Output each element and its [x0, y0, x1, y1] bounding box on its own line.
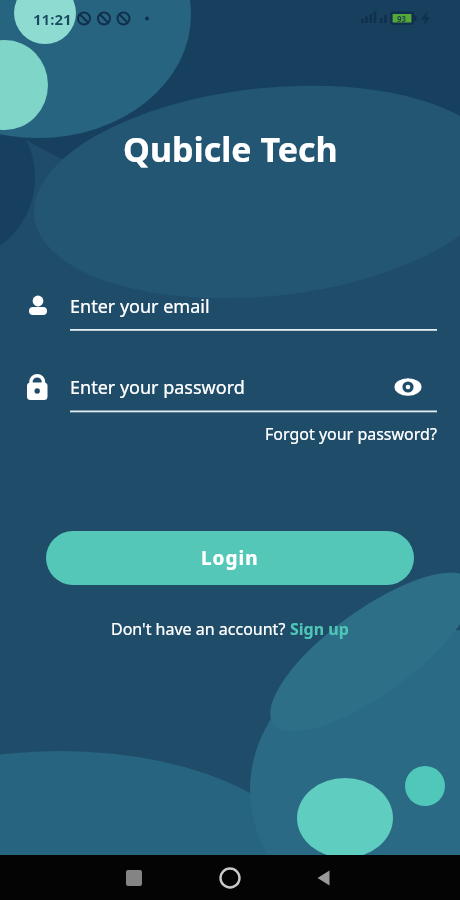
button[interactable]: Forgot your password? — [265, 423, 437, 445]
staticText: Don't have an account? — [111, 618, 290, 640]
staticText: Enter your password — [70, 375, 245, 400]
staticText: Enter your email — [70, 294, 210, 319]
button[interactable]: Enter your password — [23, 366, 437, 413]
button[interactable]: Sign up — [290, 618, 349, 640]
staticText: Qubicle Tech — [123, 126, 338, 172]
staticText: Login — [201, 545, 259, 571]
button[interactable] — [206, 855, 254, 900]
button[interactable]: Login — [46, 531, 414, 585]
button[interactable] — [110, 855, 158, 900]
button[interactable] — [300, 855, 348, 900]
staticText: 11:21 — [33, 9, 72, 29]
button[interactable]: Enter your email — [23, 286, 437, 332]
staticText: 93 — [397, 13, 407, 24]
